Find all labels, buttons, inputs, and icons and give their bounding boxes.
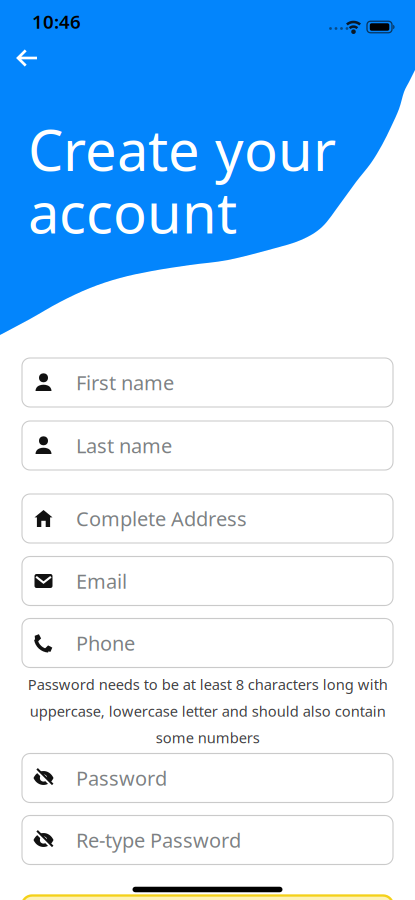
staticText: account xyxy=(28,174,237,249)
staticText: Create your xyxy=(28,112,336,186)
staticText: First name xyxy=(76,369,174,396)
staticText: Password needs to be at least 8 characte… xyxy=(27,675,387,747)
staticText: 10:46 xyxy=(32,9,81,34)
textField[interactable]: Phone xyxy=(22,618,393,667)
textField[interactable]: Re-type Password xyxy=(22,815,393,864)
button[interactable]: Sign up xyxy=(22,895,393,900)
textField[interactable]: Complete Address xyxy=(22,494,393,543)
button[interactable]: Back xyxy=(6,40,47,76)
staticText: Email xyxy=(76,568,127,594)
staticText: Password xyxy=(76,765,167,791)
staticText: Last name xyxy=(76,432,172,459)
textField[interactable]: First name xyxy=(22,358,393,407)
textField[interactable]: Password xyxy=(22,753,393,802)
textField[interactable]: Email xyxy=(22,556,393,605)
staticText: Phone xyxy=(76,630,135,656)
textField[interactable]: Last name xyxy=(22,421,393,470)
staticText: Complete Address xyxy=(76,505,247,532)
staticText: Re-type Password xyxy=(76,827,241,853)
